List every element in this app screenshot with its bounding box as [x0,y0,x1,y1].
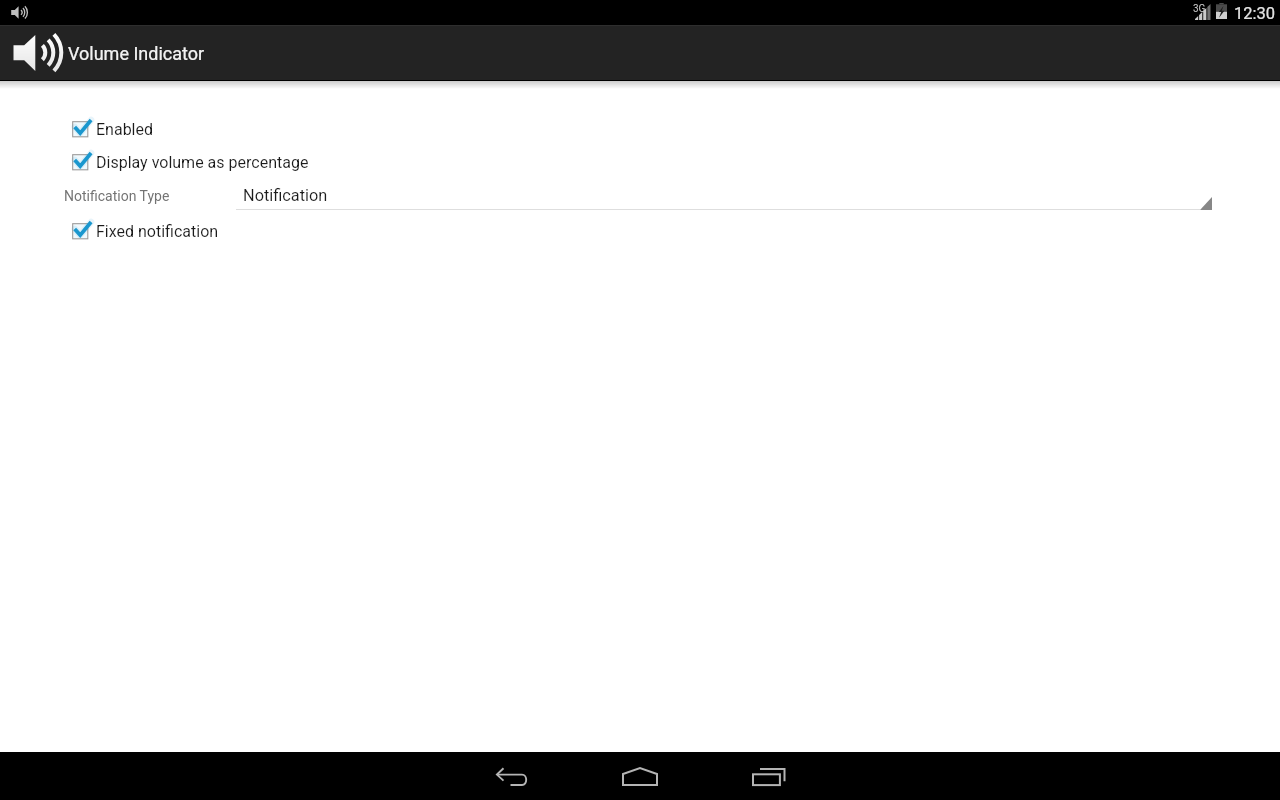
staticText: Notification [243,186,328,205]
button[interactable]: Fixed notification [0,212,1280,248]
button[interactable]: Enabled [0,110,1280,146]
staticText: Notification Type [64,188,170,204]
staticText: 12:30 [1234,4,1276,23]
staticText: Display volume as percentage [96,153,309,172]
button[interactable]: Back [448,752,576,800]
button[interactable]: Display volume as percentage [0,143,1280,179]
button[interactable]: Home [576,752,704,800]
button[interactable]: Notification [236,186,1212,214]
staticText: Volume Indicator [68,43,205,64]
staticText: Enabled [96,120,154,139]
staticText: Fixed notification [96,222,219,241]
staticText: 3G [1193,3,1206,15]
button[interactable]: Recent apps [704,752,832,800]
